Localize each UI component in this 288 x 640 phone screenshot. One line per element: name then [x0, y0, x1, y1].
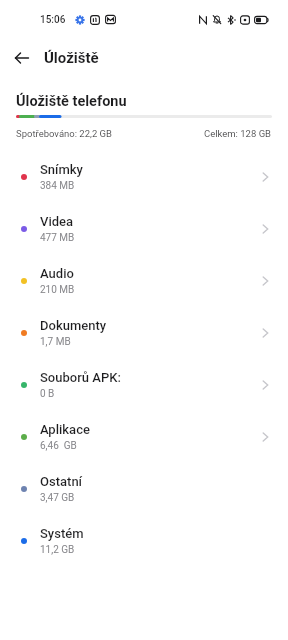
button[interactable]: Systém — [0, 515, 288, 567]
button[interactable]: Aplikace — [0, 411, 288, 463]
staticText: Souborů APK: — [40, 370, 121, 385]
staticText: Aplikace — [40, 422, 90, 437]
staticText: Audio — [40, 266, 74, 281]
button[interactable]: Souborů APK: — [0, 359, 288, 411]
staticText: 384 MB — [40, 180, 75, 192]
button[interactable]: Ostatní — [0, 463, 288, 515]
staticText: Systém — [40, 526, 84, 541]
button[interactable]: Dokumenty — [0, 307, 288, 359]
staticText: Spotřebováno: 22,2 GB — [16, 128, 113, 139]
staticText: 1,7 MB — [40, 336, 71, 348]
button[interactable] — [0, 36, 44, 80]
staticText: Celkem: 128 GB — [204, 128, 272, 139]
staticText: 6,46 GB — [40, 440, 77, 452]
staticText: Úložiště telefonu — [16, 93, 127, 110]
staticText: Snímky — [40, 162, 83, 177]
staticText: 477 MB — [40, 232, 75, 244]
button[interactable]: Snímky — [0, 151, 288, 203]
staticText: 11,2 GB — [40, 544, 75, 556]
staticText: 0 B — [40, 388, 55, 400]
button[interactable]: Videa — [0, 203, 288, 255]
staticText: 3,47 GB — [40, 492, 75, 504]
staticText: 15:06 — [40, 14, 66, 26]
button[interactable]: Audio — [0, 255, 288, 307]
staticText: Ostatní — [40, 474, 83, 489]
staticText: Videa — [40, 214, 74, 229]
staticText: 210 MB — [40, 284, 75, 296]
staticText: Dokumenty — [40, 318, 107, 333]
staticText: Úložiště — [44, 49, 99, 67]
